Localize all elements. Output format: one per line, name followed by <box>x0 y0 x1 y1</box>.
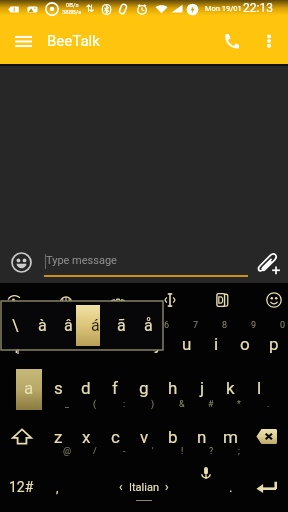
button[interactable]: Backspace <box>245 414 288 458</box>
button[interactable]: â <box>55 305 82 346</box>
staticText: h <box>168 378 178 398</box>
staticText: - <box>123 446 126 457</box>
button[interactable] <box>259 322 288 366</box>
button[interactable]: Call <box>212 18 250 64</box>
button[interactable]: ã <box>108 305 135 346</box>
staticText: b <box>168 427 178 447</box>
button[interactable]: Cursor control <box>157 287 183 313</box>
staticText: r <box>98 334 104 354</box>
staticText: ) <box>151 399 155 410</box>
staticText: ? <box>209 446 214 457</box>
button[interactable]: Open navigation menu <box>4 18 42 64</box>
staticText: s <box>54 378 63 398</box>
button[interactable] <box>144 322 173 366</box>
staticText: . <box>229 480 233 495</box>
staticText: w <box>37 334 50 354</box>
button[interactable] <box>72 366 101 410</box>
staticText: ; <box>238 446 240 457</box>
staticText: n <box>197 427 207 447</box>
button[interactable]: Handwriting <box>105 287 131 313</box>
staticText: j <box>200 378 205 398</box>
staticText: & <box>179 399 185 410</box>
button[interactable]: Enter <box>245 465 288 509</box>
staticText: k <box>226 378 235 398</box>
button[interactable]: á <box>82 305 109 346</box>
button[interactable] <box>14 366 43 410</box>
button[interactable] <box>58 322 87 366</box>
staticText: . <box>267 399 270 410</box>
button[interactable]: à <box>29 305 56 346</box>
button[interactable] <box>202 322 231 366</box>
staticText: y <box>154 334 163 354</box>
staticText: p <box>269 334 279 354</box>
staticText: 12# <box>9 479 34 495</box>
staticText: 0B/s <box>66 1 79 8</box>
staticText: 388B/s <box>62 8 82 15</box>
button[interactable] <box>130 366 159 410</box>
button[interactable] <box>173 322 202 366</box>
button[interactable]: å <box>135 305 162 346</box>
button[interactable] <box>0 322 29 366</box>
staticText: d <box>81 378 91 398</box>
button[interactable]: . <box>216 465 245 509</box>
button[interactable] <box>216 366 245 410</box>
button[interactable] <box>230 322 259 366</box>
staticText: x <box>82 427 91 447</box>
staticText: Italian <box>129 481 159 494</box>
staticText: / <box>93 446 97 457</box>
staticText: q <box>9 334 19 354</box>
button[interactable] <box>158 415 187 459</box>
staticText: â <box>64 316 73 335</box>
staticText: 7 <box>193 320 199 331</box>
staticText: Type message <box>46 254 117 267</box>
staticText: 3 <box>78 320 84 331</box>
staticText: i <box>214 334 219 354</box>
staticText: ' <box>152 446 154 457</box>
staticText: ! <box>181 446 184 457</box>
staticText: å <box>144 316 153 335</box>
button[interactable] <box>187 415 216 459</box>
button[interactable] <box>43 366 72 410</box>
button[interactable] <box>115 322 144 366</box>
button[interactable] <box>43 415 72 459</box>
staticText: @ <box>63 446 72 457</box>
button[interactable] <box>187 366 216 410</box>
button[interactable]: Theme <box>209 287 235 313</box>
staticText: 9 <box>251 320 257 331</box>
staticText: z <box>54 427 63 447</box>
staticText: * <box>237 399 241 410</box>
staticText: ( <box>93 399 97 410</box>
staticText: 0 <box>280 320 286 331</box>
staticText: › <box>165 480 169 494</box>
button[interactable] <box>158 366 187 410</box>
button[interactable]: Shift <box>0 414 43 458</box>
staticText: 22:13 <box>243 1 273 15</box>
button[interactable]: Emoji <box>5 246 38 279</box>
staticText: á <box>91 316 100 335</box>
button[interactable]: , <box>43 465 72 509</box>
button[interactable] <box>130 415 159 459</box>
button[interactable]: Attach file <box>252 246 286 280</box>
button[interactable]: 12# <box>0 465 43 509</box>
button[interactable] <box>101 415 130 459</box>
staticText: , <box>56 480 59 495</box>
button[interactable]: Emoji <box>261 287 287 313</box>
button[interactable]: Space <box>72 465 216 509</box>
staticText: à <box>38 316 47 335</box>
staticText: ‹ <box>119 480 123 494</box>
button[interactable] <box>216 415 245 459</box>
button[interactable]: \ <box>2 305 29 346</box>
staticText: 8 <box>222 320 228 331</box>
button[interactable] <box>245 366 274 410</box>
button[interactable] <box>101 366 130 410</box>
button[interactable]: Change language <box>53 287 79 313</box>
button[interactable]: Voice input <box>1 287 27 313</box>
staticText: 6 <box>164 320 170 331</box>
button[interactable] <box>29 322 58 366</box>
button[interactable] <box>72 415 101 459</box>
staticText: t <box>127 334 133 354</box>
button[interactable]: More options <box>252 18 286 64</box>
button[interactable] <box>86 322 115 366</box>
